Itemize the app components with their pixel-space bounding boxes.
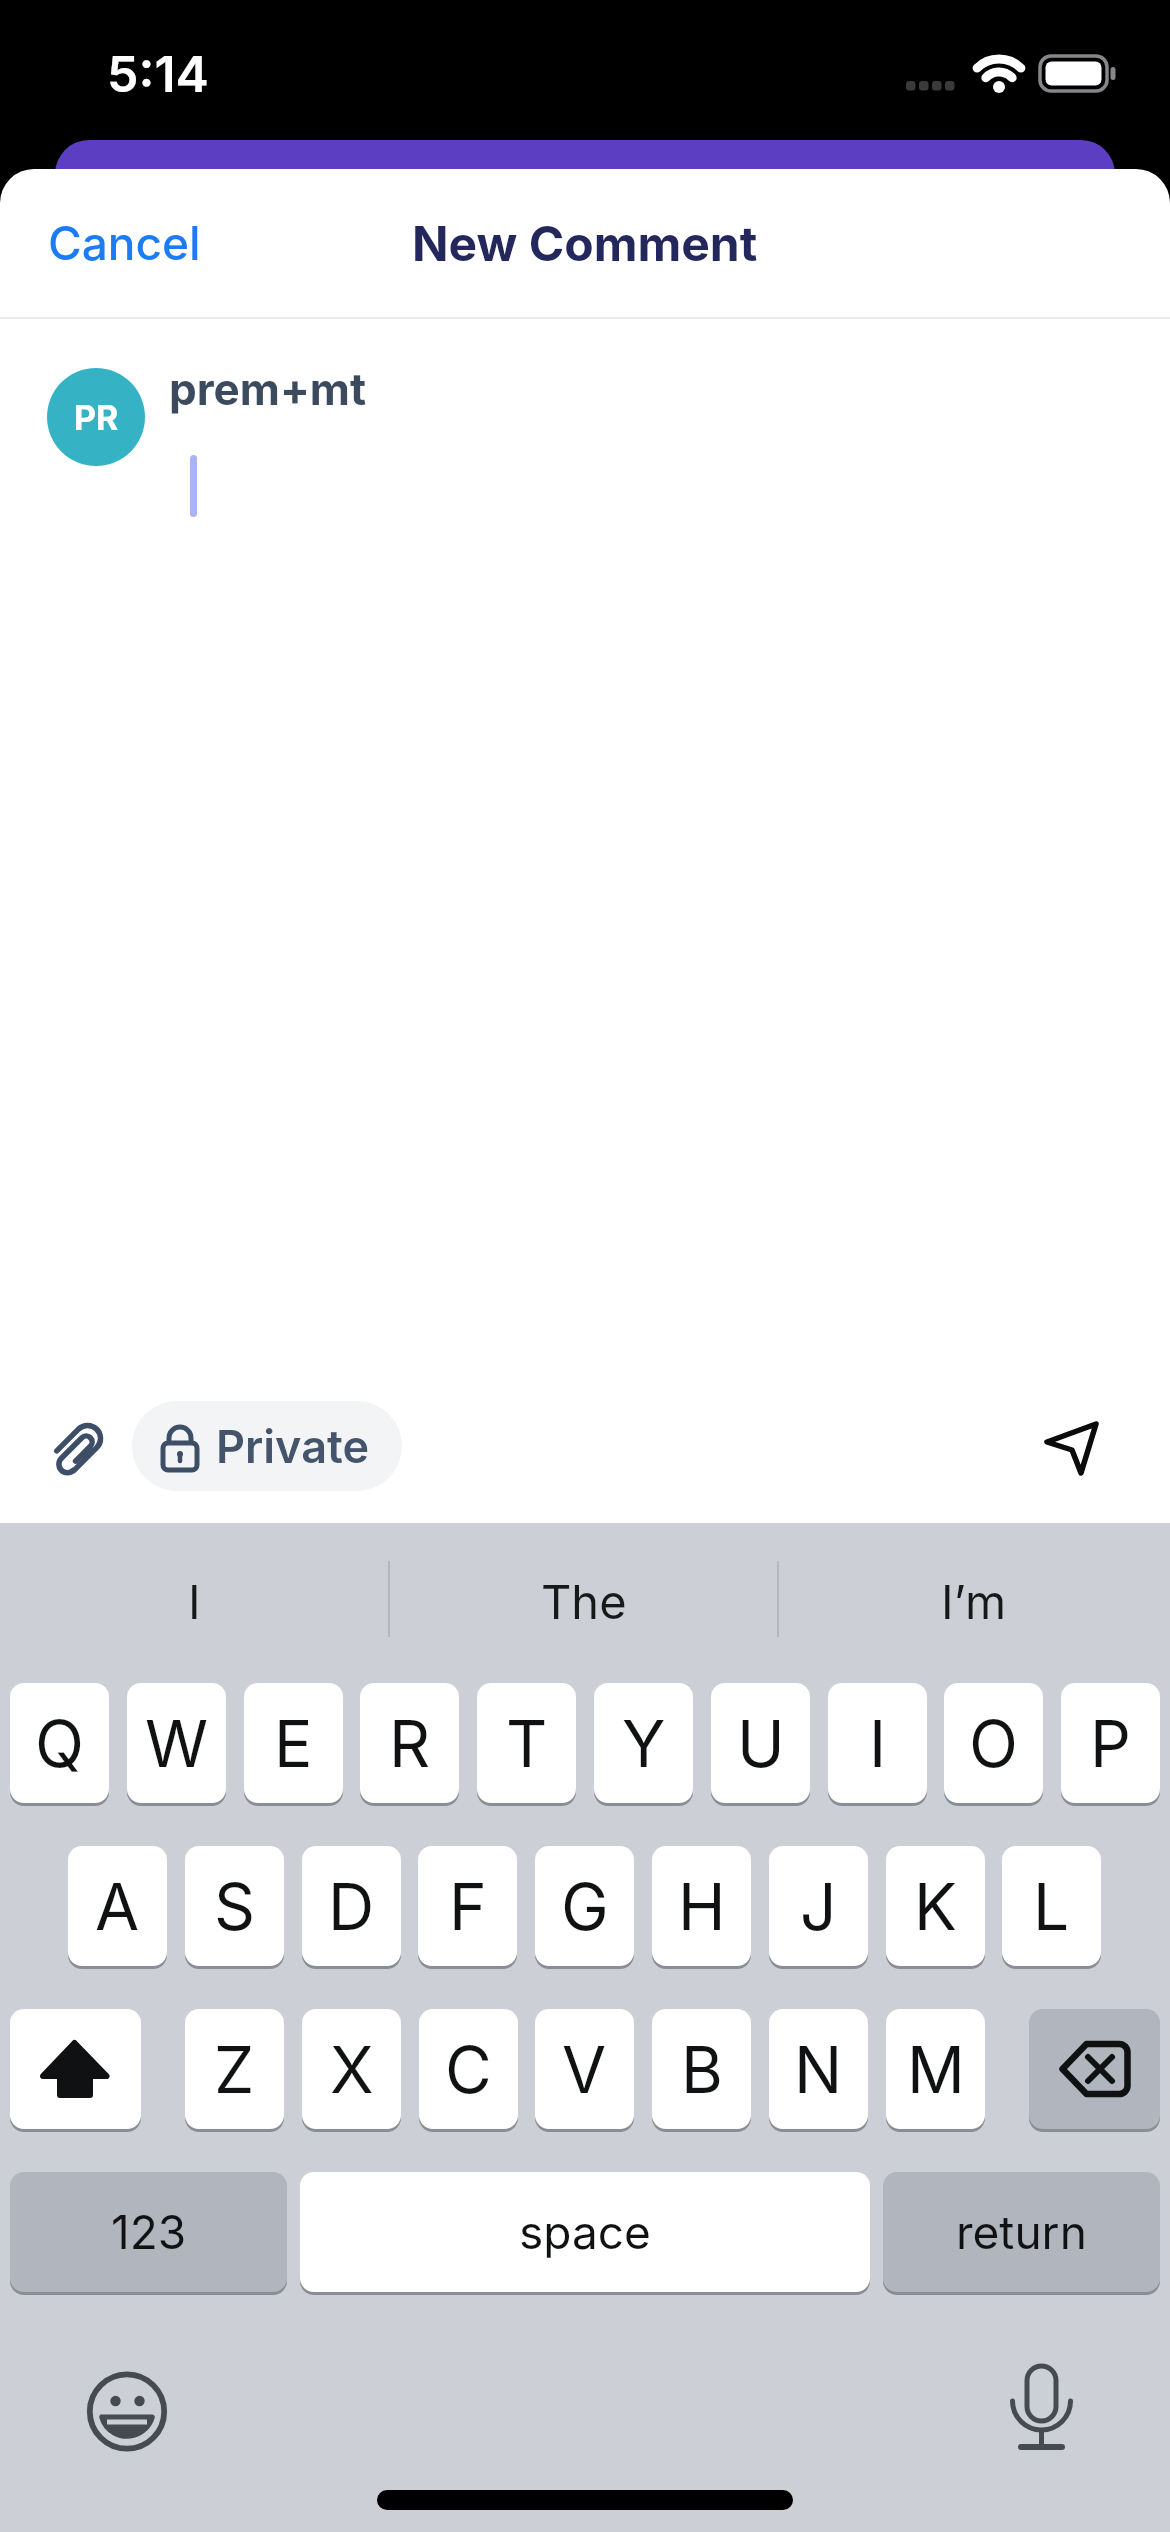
staticText: D: [328, 1868, 375, 1945]
staticText: T: [506, 1705, 548, 1782]
staticText: H: [678, 1868, 726, 1945]
button[interactable]: Y: [594, 1683, 693, 1803]
button[interactable]: F: [418, 1846, 517, 1966]
staticText: Private: [216, 1419, 370, 1473]
staticText: Z: [214, 2031, 255, 2108]
staticText: A: [95, 1868, 140, 1945]
button[interactable]: J: [769, 1846, 868, 1966]
button[interactable]: V: [535, 2009, 634, 2129]
staticText: B: [681, 2031, 723, 2108]
button[interactable]: [10, 2009, 141, 2129]
staticText: E: [274, 1705, 313, 1782]
staticText: Y: [622, 1705, 666, 1782]
button[interactable]: B: [652, 2009, 751, 2129]
button[interactable]: K: [886, 1846, 985, 1966]
button[interactable]: Cancel: [24, 169, 284, 317]
staticText: New Comment: [412, 214, 758, 272]
button[interactable]: Private: [132, 1401, 402, 1491]
staticText: I: [869, 1705, 887, 1782]
staticText: O: [969, 1705, 1018, 1782]
button[interactable]: [1029, 2009, 1160, 2129]
staticText: S: [214, 1868, 256, 1945]
button[interactable]: S: [185, 1846, 284, 1966]
staticText: V: [562, 2031, 607, 2108]
button[interactable]: R: [360, 1683, 459, 1803]
button[interactable]: [43, 1415, 113, 1485]
staticText: R: [389, 1705, 431, 1782]
staticText: G: [561, 1868, 609, 1945]
button[interactable]: [1007, 2360, 1079, 2452]
button[interactable]: M: [886, 2009, 985, 2129]
button[interactable]: U: [711, 1683, 810, 1803]
staticText: The: [541, 1573, 627, 1630]
button[interactable]: O: [944, 1683, 1043, 1803]
staticText: W: [145, 1705, 209, 1782]
button[interactable]: E: [244, 1683, 343, 1803]
staticText: PR: [74, 397, 119, 438]
staticText: 123: [111, 2204, 187, 2260]
button[interactable]: N: [769, 2009, 868, 2129]
staticText: P: [1090, 1705, 1131, 1782]
staticText: prem+mt: [169, 362, 367, 415]
button[interactable]: A: [68, 1846, 167, 1966]
button[interactable]: space: [300, 2172, 870, 2292]
staticText: Cancel: [48, 215, 201, 271]
staticText: J: [800, 1868, 837, 1945]
staticText: M: [907, 2031, 965, 2108]
staticText: X: [330, 2031, 374, 2108]
staticText: I: [188, 1573, 201, 1630]
button[interactable]: I: [0, 1523, 389, 1679]
staticText: Q: [35, 1705, 84, 1782]
button[interactable]: W: [127, 1683, 226, 1803]
staticText: K: [914, 1868, 957, 1945]
button[interactable]: Q: [10, 1683, 109, 1803]
button[interactable]: L: [1002, 1846, 1101, 1966]
button[interactable]: G: [535, 1846, 634, 1966]
staticText: F: [449, 1868, 487, 1945]
button[interactable]: P: [1061, 1683, 1160, 1803]
button[interactable]: H: [652, 1846, 751, 1966]
button[interactable]: T: [477, 1683, 576, 1803]
staticText: U: [737, 1705, 785, 1782]
button[interactable]: return: [883, 2172, 1160, 2292]
button[interactable]: I: [828, 1683, 927, 1803]
button[interactable]: X: [302, 2009, 401, 2129]
button[interactable]: [87, 2371, 167, 2452]
button[interactable]: The: [389, 1523, 778, 1679]
button[interactable]: 123: [10, 2172, 287, 2292]
staticText: return: [956, 2204, 1087, 2260]
button[interactable]: C: [419, 2009, 518, 2129]
button[interactable]: Z: [185, 2009, 284, 2129]
button[interactable]: I’m: [778, 1523, 1170, 1679]
staticText: I’m: [941, 1573, 1007, 1630]
staticText: N: [794, 2031, 843, 2108]
staticText: C: [445, 2031, 492, 2108]
staticText: space: [519, 2204, 651, 2260]
button[interactable]: [1040, 1415, 1104, 1479]
staticText: L: [1033, 1868, 1070, 1945]
staticText: 5:14: [107, 44, 209, 104]
button[interactable]: D: [302, 1846, 401, 1966]
